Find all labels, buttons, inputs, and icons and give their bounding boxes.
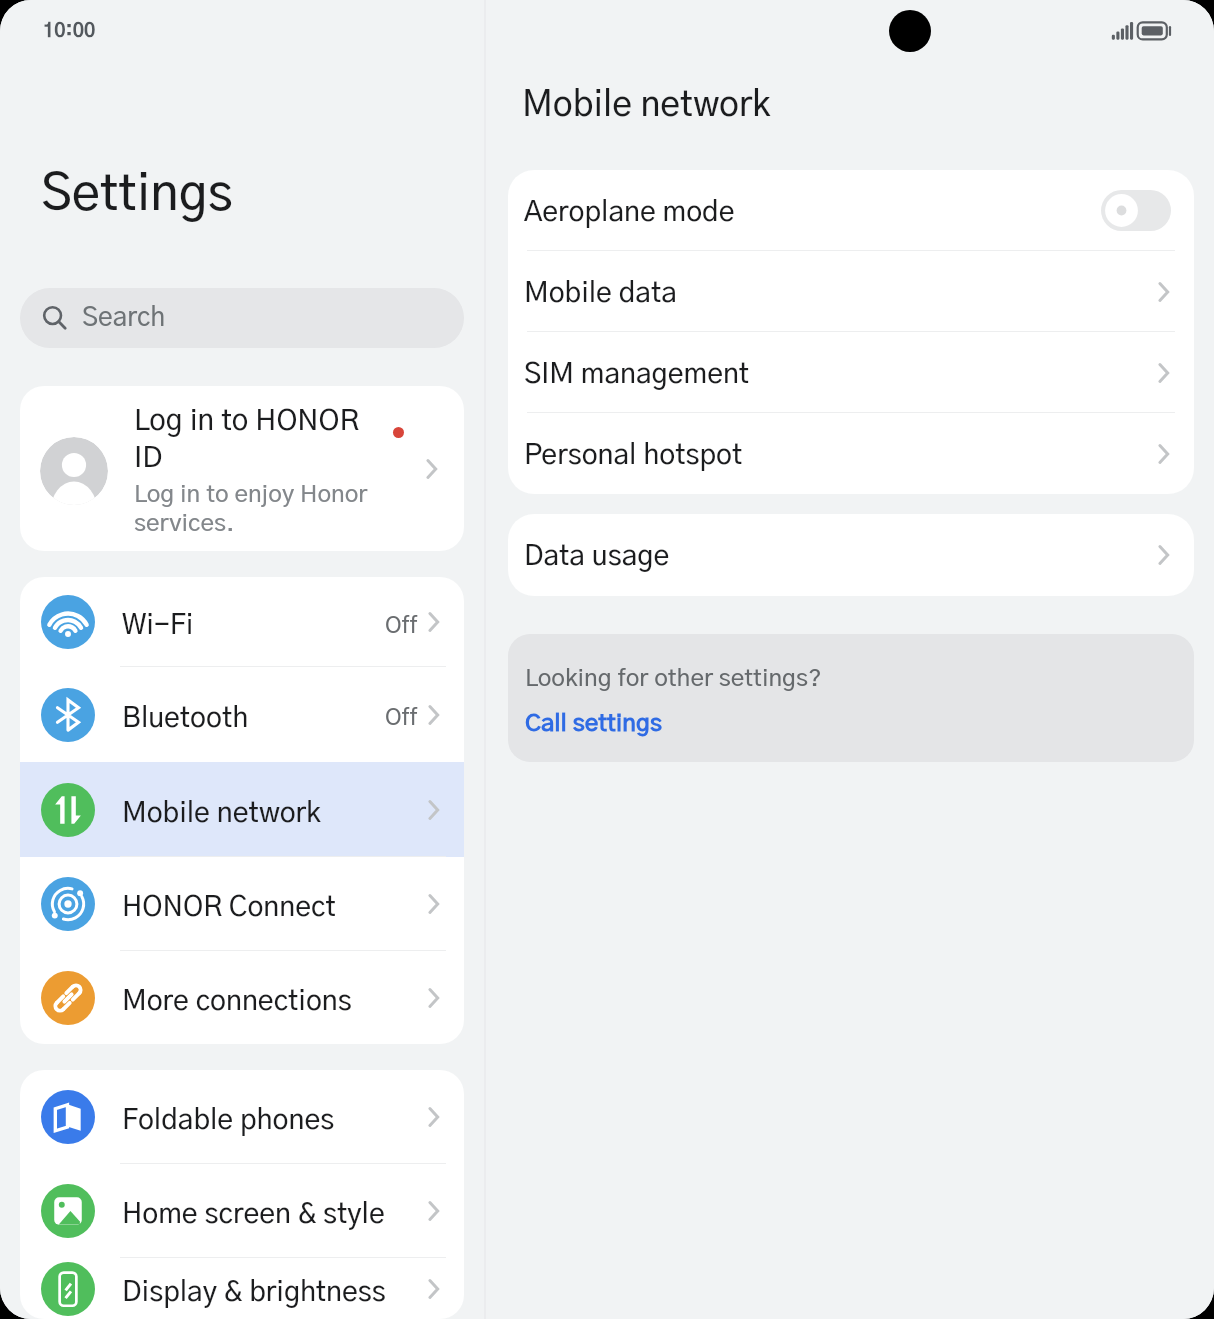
staticText: Aeroplane mode	[524, 199, 735, 227]
button[interactable]: More connections	[20, 951, 464, 1044]
staticText: Search	[82, 305, 166, 331]
staticText: Call settings	[525, 712, 662, 736]
staticText: Log in to HONOR ID	[134, 407, 366, 472]
staticText: Data usage	[524, 543, 670, 571]
staticText: Display & brightness	[122, 1279, 386, 1307]
staticText: Looking for other settings?	[525, 667, 822, 691]
button[interactable]: Display & brightness	[20, 1258, 464, 1319]
staticText: Settings	[41, 170, 233, 220]
button[interactable]: Log in to HONOR ID	[20, 386, 464, 551]
staticText: 10:00	[43, 21, 96, 41]
staticText: Home screen & style	[122, 1201, 385, 1229]
staticText: Wi-Fi	[122, 612, 194, 640]
button[interactable]: Search	[20, 288, 464, 348]
staticText: HONOR Connect	[122, 894, 336, 922]
staticText: Mobile data	[524, 280, 677, 308]
button[interactable]: SIM management	[508, 332, 1194, 413]
staticText: SIM management	[524, 361, 750, 389]
staticText: Mobile network	[522, 88, 771, 123]
button[interactable]: Aeroplane mode	[508, 170, 1194, 251]
staticText: Log in to enjoy Honor services.	[134, 483, 384, 536]
staticText: Bluetooth	[122, 705, 249, 733]
staticText: Personal hotspot	[524, 442, 743, 470]
button[interactable]: Data usage	[508, 514, 1194, 596]
staticText: Mobile network	[122, 800, 321, 828]
button[interactable]: Home screen & style	[20, 1164, 464, 1258]
button[interactable]: HONOR Connect	[20, 857, 464, 951]
button[interactable]: Wi-Fi	[20, 577, 464, 667]
staticText: More connections	[122, 988, 352, 1016]
button[interactable]: Bluetooth	[20, 667, 464, 762]
staticText: Off	[385, 615, 418, 638]
staticText: Off	[385, 707, 418, 730]
button[interactable]: Aeroplane mode toggle	[1101, 190, 1171, 231]
button[interactable]: Mobile data	[508, 251, 1194, 332]
button[interactable]: Personal hotspot	[508, 413, 1194, 494]
button[interactable]: Mobile network	[20, 762, 464, 857]
staticText: Foldable phones	[122, 1107, 335, 1135]
button[interactable]: Call settings	[525, 712, 662, 736]
button[interactable]: Foldable phones	[20, 1070, 464, 1164]
